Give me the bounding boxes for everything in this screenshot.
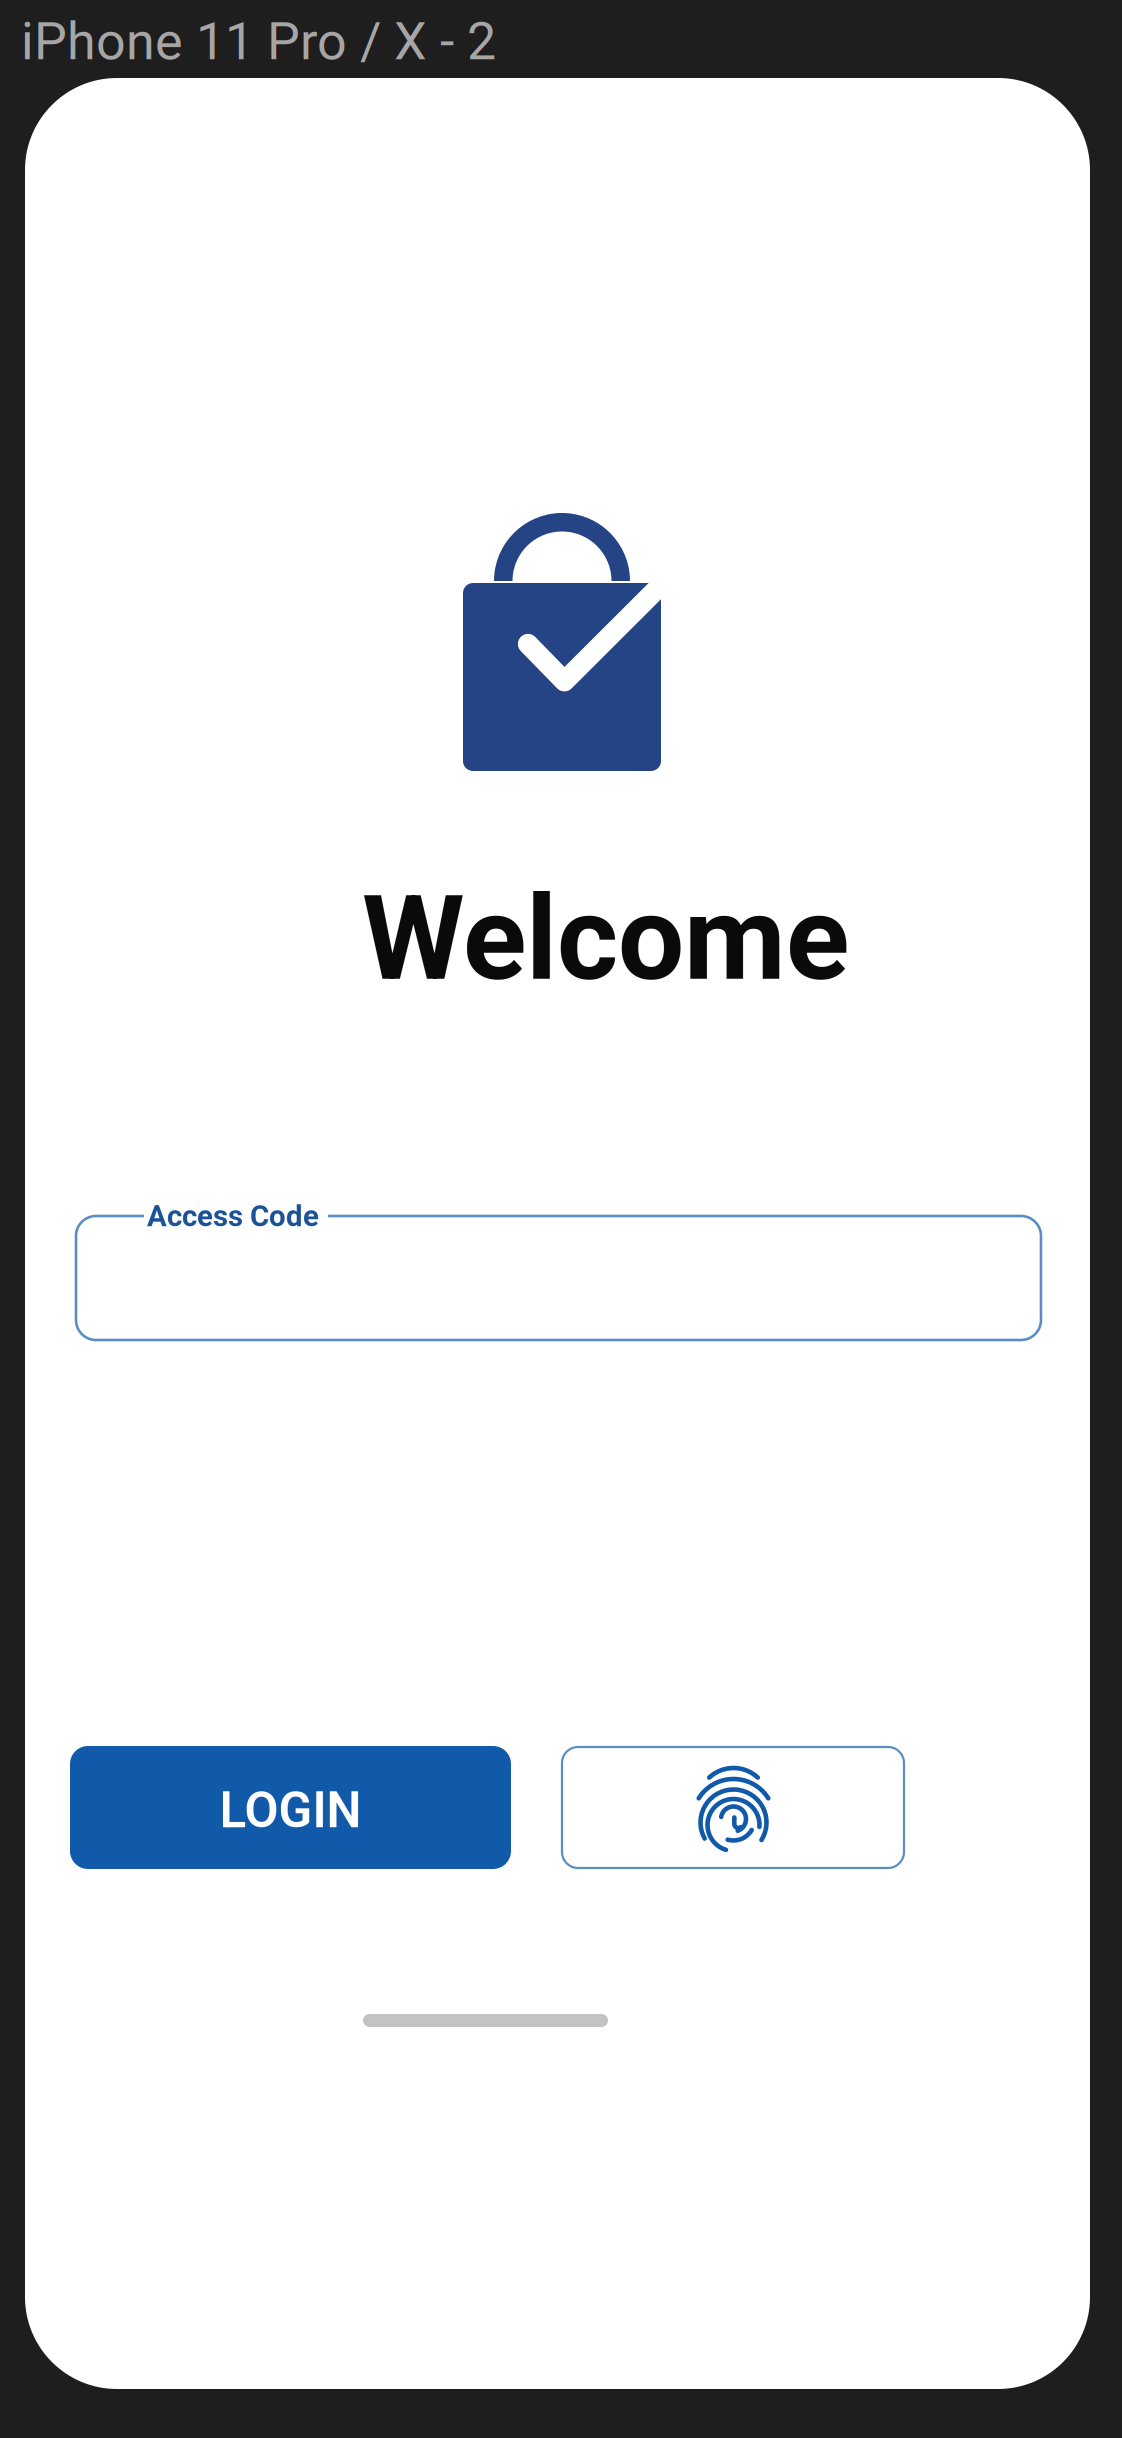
button[interactable]: Sign in with fingerprint (562, 1747, 904, 1868)
staticText: LOGIN (219, 1782, 361, 1839)
staticText: Access Code (147, 1199, 319, 1233)
staticText: iPhone 11 Pro / X - 2 (21, 11, 496, 72)
button[interactable]: LOGIN (70, 1746, 511, 1869)
staticText: Welcome (362, 870, 849, 1007)
